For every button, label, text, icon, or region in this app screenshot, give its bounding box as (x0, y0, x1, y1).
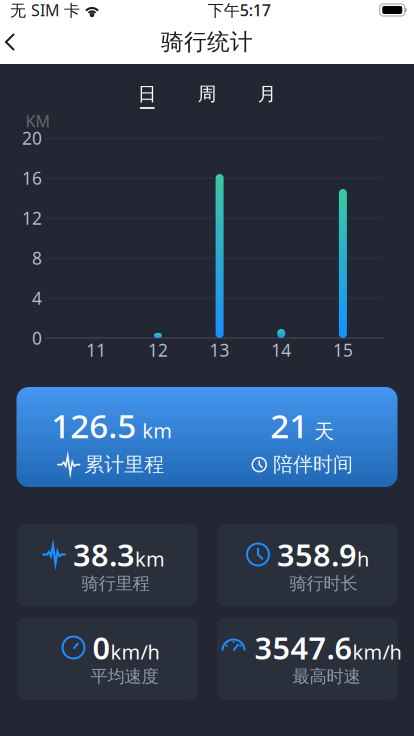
staticText: 15 (333, 338, 353, 361)
staticText: km (135, 545, 165, 572)
staticText: km/h (110, 638, 159, 665)
staticText: 358.9 (277, 534, 357, 575)
staticText: 14 (271, 338, 291, 361)
staticText: 3547.6 (254, 627, 352, 668)
staticText: 0 (32, 326, 42, 349)
button[interactable]: 周 (177, 78, 237, 112)
staticText: 骑行时长 (289, 573, 357, 594)
staticText: 12 (148, 338, 168, 361)
staticText: 陪伴时间 (273, 452, 353, 477)
staticText: 16 (22, 166, 42, 189)
staticText: km (142, 417, 172, 444)
staticText: h (357, 545, 369, 572)
staticText: km/h (352, 638, 401, 665)
button[interactable]: 38.3 (17, 524, 198, 607)
staticText: 最高时速 (292, 666, 360, 687)
staticText: 下午5:17 (208, 0, 271, 21)
button[interactable]: Back (0, 20, 44, 64)
staticText: 日 (138, 82, 157, 105)
staticText: 月 (258, 82, 277, 105)
button[interactable]: 日 (117, 78, 177, 112)
button[interactable]: 3547.6 (217, 617, 398, 700)
staticText: 骑行统计 (161, 28, 253, 56)
button[interactable]: 126.5 (16, 387, 397, 487)
staticText: 11 (86, 338, 106, 361)
staticText: 累计里程 (84, 452, 164, 477)
button[interactable]: 358.9 (217, 524, 398, 607)
staticText: 20 (22, 126, 42, 149)
staticText: 38.3 (73, 534, 135, 575)
staticText: 平均速度 (90, 666, 158, 687)
staticText: 天 (314, 419, 334, 444)
staticText: KM (25, 110, 50, 132)
staticText: 13 (210, 338, 230, 361)
staticText: 126.5 (51, 403, 136, 447)
staticText: 4 (32, 286, 42, 309)
button[interactable]: 月 (237, 78, 297, 112)
staticText: 12 (22, 206, 42, 229)
staticText: 无 SIM 卡 (10, 0, 80, 21)
staticText: 21 (270, 403, 308, 447)
staticText: 0 (92, 627, 110, 668)
staticText: 8 (32, 246, 42, 269)
staticText: 骑行里程 (81, 573, 149, 594)
button[interactable]: 0 (17, 617, 198, 700)
staticText: 周 (198, 82, 217, 105)
